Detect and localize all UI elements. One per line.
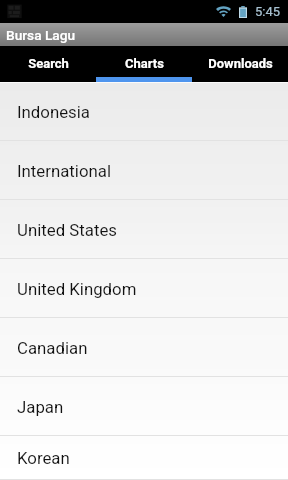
- staticText: International: [17, 161, 112, 181]
- staticText: United States: [17, 220, 117, 240]
- button[interactable]: Charts: [96, 46, 192, 77]
- staticText: Bursa Lagu: [6, 27, 76, 43]
- button[interactable]: United Kingdom: [0, 259, 288, 318]
- staticText: Canadian: [17, 338, 88, 358]
- button[interactable]: Indonesia: [0, 82, 288, 141]
- staticText: 5:45: [255, 4, 281, 19]
- button[interactable]: Canadian: [0, 318, 288, 377]
- button[interactable]: Japan: [0, 377, 288, 436]
- button[interactable]: United States: [0, 200, 288, 259]
- staticText: Charts: [125, 56, 164, 71]
- button[interactable]: Search: [0, 46, 96, 77]
- staticText: Search: [28, 56, 69, 71]
- button[interactable]: Downloads: [192, 46, 288, 77]
- staticText: United Kingdom: [17, 279, 137, 299]
- staticText: Japan: [17, 397, 64, 417]
- button[interactable]: Korean: [0, 436, 288, 480]
- staticText: Korean: [17, 448, 70, 468]
- staticText: Indonesia: [17, 102, 90, 122]
- staticText: Downloads: [208, 56, 273, 71]
- button[interactable]: International: [0, 141, 288, 200]
